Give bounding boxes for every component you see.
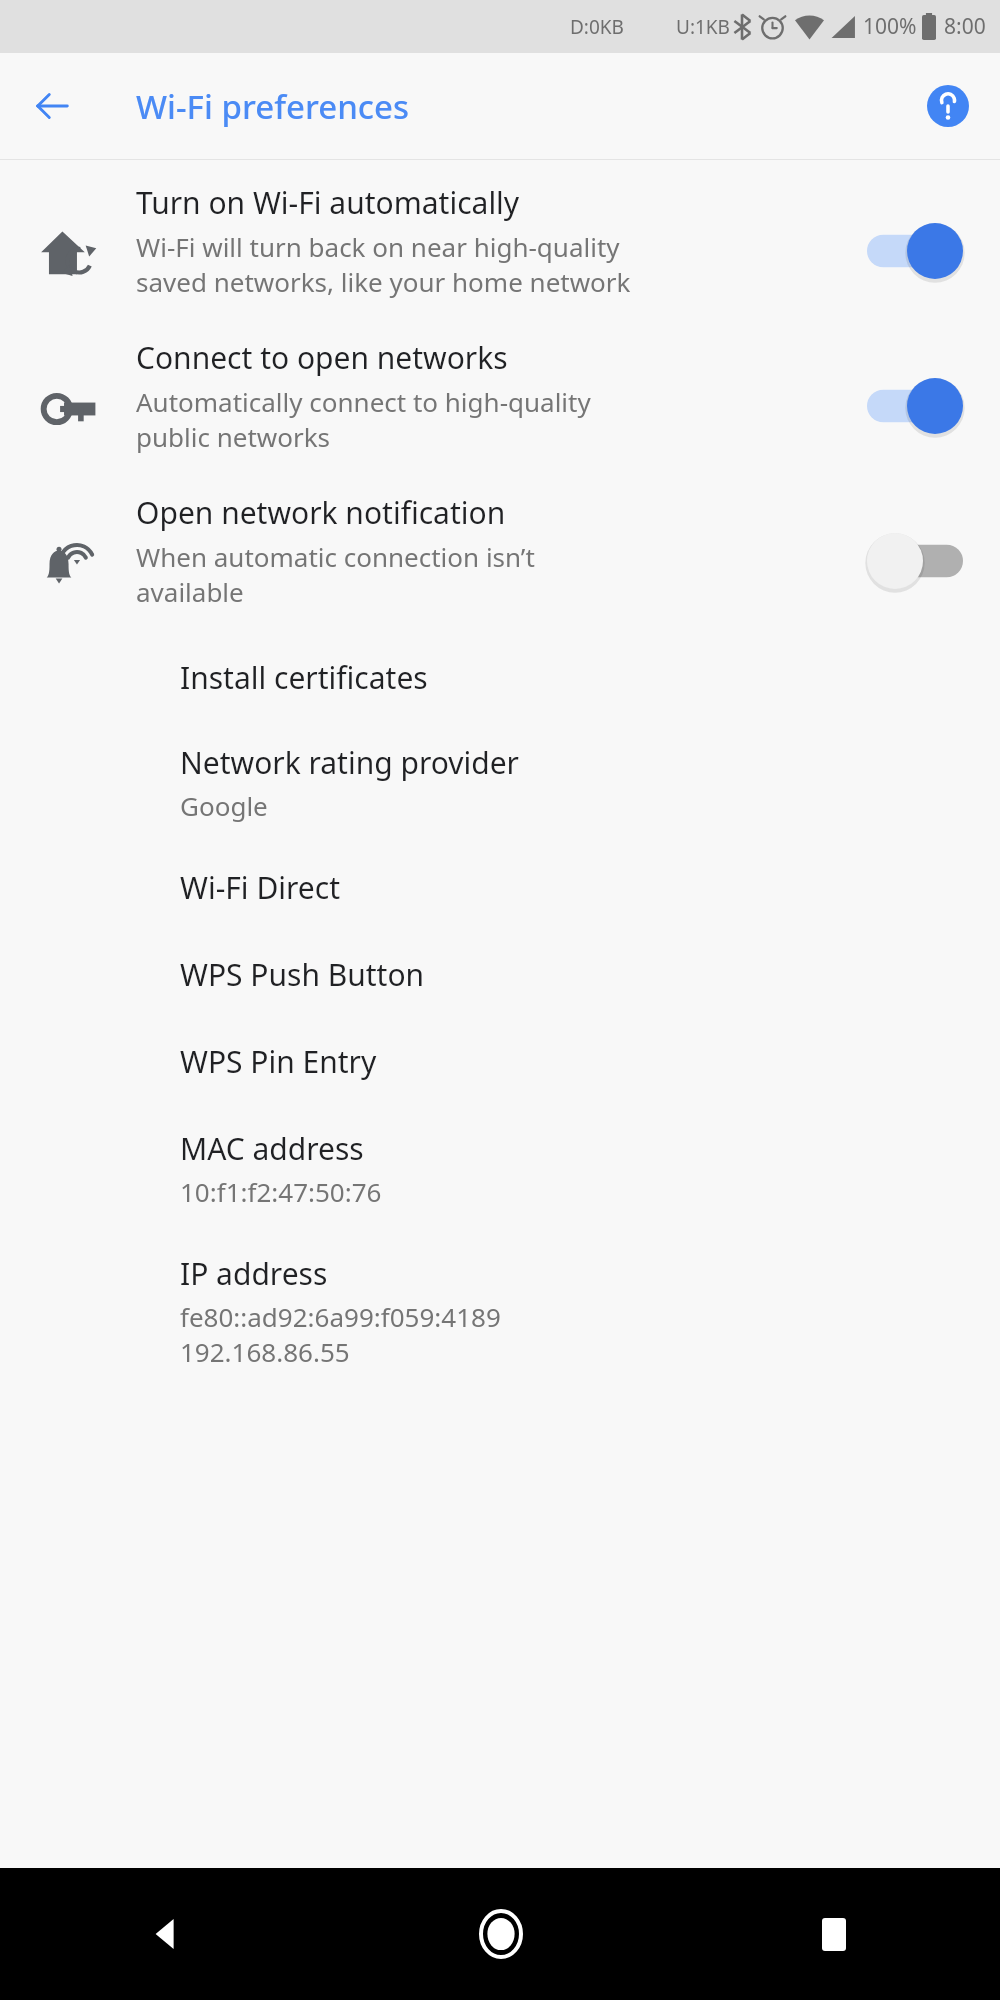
staticText: public networks: [136, 419, 331, 454]
staticText: 100%: [863, 12, 917, 41]
button[interactable]: Turn on Wi-Fi automatically: [860, 216, 970, 286]
button[interactable]: Recent apps: [667, 1868, 1000, 2000]
button[interactable]: Back: [0, 1868, 334, 2000]
staticText: available: [136, 574, 244, 609]
staticText: fe80::ad92:6a99:f059:4189: [180, 1299, 501, 1334]
staticText: 192.168.86.55: [180, 1334, 350, 1369]
staticText: Turn on Wi-Fi automatically: [136, 182, 520, 223]
staticText: IP address: [180, 1253, 328, 1294]
staticText: Network rating provider: [180, 742, 519, 783]
button[interactable]: Home: [334, 1868, 667, 2000]
button[interactable]: WPS Push Button: [0, 908, 1000, 995]
button[interactable]: Install certificates: [0, 615, 1000, 698]
staticText: 8:00: [944, 12, 986, 41]
staticText: Wi-Fi Direct: [180, 867, 340, 908]
staticText: Google: [180, 788, 268, 823]
staticText: Install certificates: [180, 657, 428, 698]
staticText: When automatic connection isn’t: [136, 539, 535, 574]
button[interactable]: Wi-Fi Direct: [0, 823, 1000, 908]
staticText: Connect to open networks: [136, 337, 508, 378]
button[interactable]: Back: [20, 74, 84, 138]
button[interactable]: MAC address: [0, 1082, 1000, 1209]
staticText: Wi-Fi will turn back on near high-qualit…: [136, 229, 620, 264]
button[interactable]: Help: [918, 76, 978, 136]
staticText: saved networks, like your home network: [136, 264, 631, 299]
staticText: MAC address: [180, 1128, 364, 1169]
staticText: 10:f1:f2:47:50:76: [180, 1174, 382, 1209]
staticText: U:1KB: [676, 14, 730, 40]
button[interactable]: Connect to open networks: [0, 305, 1000, 460]
button[interactable]: Open network notification: [860, 526, 970, 596]
staticText: Open network notification: [136, 492, 506, 533]
button[interactable]: Connect to open networks: [860, 371, 970, 441]
button[interactable]: WPS Pin Entry: [0, 995, 1000, 1082]
staticText: WPS Push Button: [180, 954, 425, 995]
button[interactable]: IP address: [0, 1209, 1000, 1369]
staticText: Automatically connect to high-quality: [136, 384, 591, 419]
button[interactable]: Open network notification: [0, 460, 1000, 615]
staticText: WPS Pin Entry: [180, 1041, 377, 1082]
button[interactable]: Network rating provider: [0, 698, 1000, 823]
staticText: Wi-Fi preferences: [136, 84, 410, 129]
staticText: D:0KB: [570, 14, 624, 40]
button[interactable]: Turn on Wi-Fi automatically: [0, 160, 1000, 305]
